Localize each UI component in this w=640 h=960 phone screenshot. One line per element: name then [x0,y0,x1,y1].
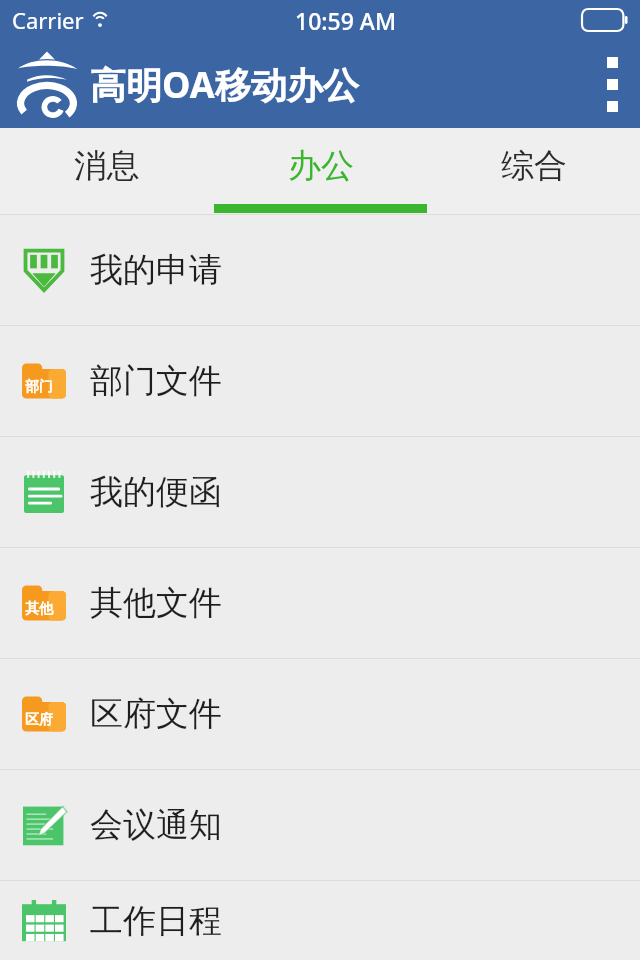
staticText: 我的便函 [90,471,222,513]
staticText: 部门文件 [90,360,222,402]
staticText: 区府文件 [90,693,222,735]
button[interactable]: 其他 [0,548,640,658]
button[interactable]: 区府 [0,659,640,769]
staticText: 10:59 AM [295,5,397,36]
staticText: 高明OA移动办公 [90,60,359,109]
staticText: 其他文件 [90,582,222,624]
button[interactable]: 会议通知 [0,770,640,880]
button[interactable]: More options [585,43,640,126]
button[interactable]: 我的申请 [0,215,640,325]
button[interactable]: 综合 [427,128,640,215]
button[interactable]: 工作日程 [0,881,640,960]
staticText: 其他 [25,600,53,618]
staticText: 我的申请 [90,249,222,291]
staticText: 办公 [288,145,354,187]
staticText: 区府 [25,711,53,729]
button[interactable]: 我的便函 [0,437,640,547]
button[interactable]: 部门 [0,326,640,436]
staticText: 部门 [25,378,53,396]
staticText: 工作日程 [90,900,222,942]
staticText: 消息 [74,145,140,187]
button[interactable]: 消息 [0,128,214,215]
staticText: 会议通知 [90,804,222,846]
staticText: Carrier [12,5,84,35]
staticText: 综合 [501,145,567,187]
button[interactable]: 办公 [214,128,427,215]
